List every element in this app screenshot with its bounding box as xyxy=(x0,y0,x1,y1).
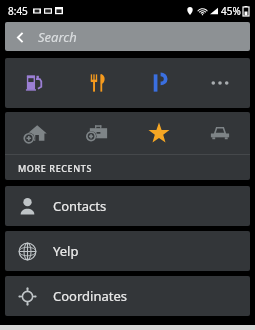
button[interactable]: Favorites xyxy=(128,112,189,154)
button[interactable]: Contacts xyxy=(5,186,250,226)
staticText: Contacts xyxy=(53,197,107,215)
button[interactable]: Yelp xyxy=(5,231,250,271)
staticText: 8:45 xyxy=(8,4,28,18)
button[interactable]: Gas stations xyxy=(5,58,67,108)
button[interactable]: Parking xyxy=(128,58,189,108)
staticText: MORE RECENTS xyxy=(18,162,92,174)
button[interactable]: Car xyxy=(189,112,250,154)
button[interactable]: MORE RECENTS xyxy=(5,155,250,180)
button[interactable]: Coordinates xyxy=(5,276,250,316)
other: Back xyxy=(14,31,27,44)
staticText: Coordinates xyxy=(53,287,127,305)
staticText: 45% xyxy=(221,4,241,18)
staticText: Search xyxy=(38,28,77,46)
staticText: Yelp xyxy=(53,242,79,260)
button[interactable]: Home xyxy=(5,112,67,154)
button[interactable]: Back xyxy=(5,22,250,51)
button[interactable]: Restaurants xyxy=(67,58,128,108)
button[interactable]: More xyxy=(189,58,250,108)
button[interactable]: Work xyxy=(67,112,128,154)
